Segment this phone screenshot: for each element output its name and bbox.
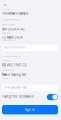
staticText: Your name (2, 9, 10, 11)
staticText: SBR-2024-0142 (2, 27, 25, 31)
staticText: Sign in (25, 108, 35, 111)
staticText: Enter reference (4, 46, 26, 49)
staticText: SELF BILLING REFERENCE (2, 19, 20, 21)
staticText: ✕ (4, 3, 6, 6)
staticText: Date issued (2, 32, 10, 34)
staticText: I accept the declaration (2, 95, 34, 98)
staticText: 12 March 2024 (2, 36, 23, 39)
staticText: GB 482 1947 22 (2, 63, 27, 67)
staticText: Registered name (2, 69, 14, 71)
staticText: Makers Trading Ltd (2, 73, 26, 76)
staticText: 20% standard rate (4, 86, 28, 89)
staticText: info@makers.example (2, 12, 29, 15)
staticText: Supplier reference (2, 39, 16, 41)
button[interactable]: Sign in (2, 105, 58, 114)
staticText: VAT number (2, 60, 11, 62)
button[interactable]: Close (2, 2, 8, 8)
staticText: VAT REGISTRATION DETAILS (2, 55, 21, 57)
button[interactable]: Accept declaration (47, 94, 58, 100)
staticText: VAT rate (2, 78, 8, 79)
staticText: Reference number (2, 24, 16, 26)
